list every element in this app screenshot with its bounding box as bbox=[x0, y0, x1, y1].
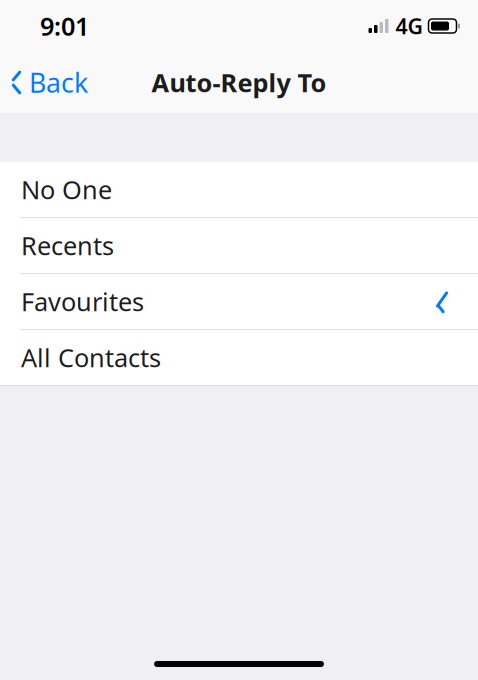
button[interactable]: All Contacts bbox=[0, 330, 478, 386]
button[interactable]: Recents bbox=[0, 218, 478, 274]
button[interactable]: No One bbox=[0, 162, 478, 218]
button[interactable]: Back bbox=[0, 60, 98, 104]
staticText: Auto-Reply To bbox=[151, 66, 326, 99]
staticText: No One bbox=[21, 173, 112, 206]
staticText: Recents bbox=[21, 229, 114, 262]
staticText: All Contacts bbox=[21, 341, 161, 374]
staticText: 9:01 bbox=[40, 9, 89, 43]
staticText: Back bbox=[29, 65, 88, 100]
staticText: Favourites bbox=[21, 285, 144, 318]
button[interactable]: Favourites bbox=[0, 274, 478, 330]
staticText: 4G bbox=[395, 12, 422, 40]
